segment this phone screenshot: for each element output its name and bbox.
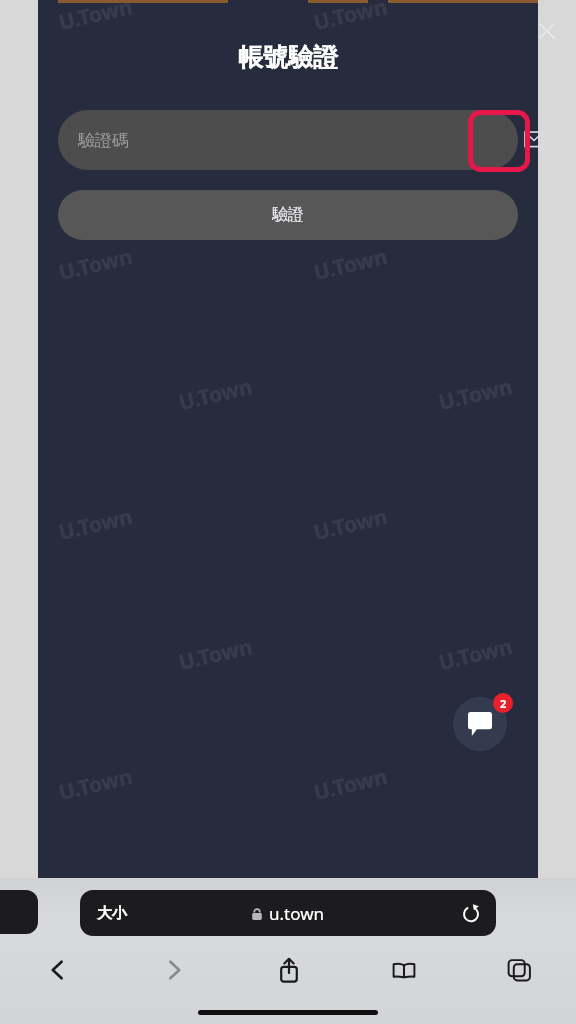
staticText: U.Town [56, 502, 135, 547]
button[interactable]: Reload [456, 898, 486, 928]
staticText: U.Town [311, 502, 390, 547]
button[interactable]: Previous tab [0, 890, 38, 934]
staticText: u.town [269, 902, 325, 925]
staticText: 大小 [97, 904, 127, 923]
staticText: 2 [500, 696, 507, 711]
button[interactable]: Chat [453, 697, 507, 751]
button[interactable]: Send verification code by email [508, 112, 564, 168]
button[interactable]: 驗證碼 [58, 110, 518, 170]
staticText: U.Town [436, 632, 515, 677]
staticText: U.Town [56, 762, 135, 807]
staticText: 驗證 [272, 205, 304, 225]
staticText: U.Town [311, 762, 390, 807]
staticText: 驗證碼 [78, 130, 129, 151]
button[interactable]: 驗證 [58, 190, 518, 240]
button[interactable]: Share [231, 946, 346, 994]
staticText: U.Town [436, 372, 515, 417]
staticText: U.Town [176, 632, 255, 677]
staticText: U.Town [176, 372, 255, 417]
button[interactable]: Close [525, 9, 569, 53]
button[interactable]: Back [0, 946, 116, 994]
staticText: U.Town [311, 242, 390, 287]
button[interactable]: 大小 [80, 890, 496, 936]
staticText: U.Town [436, 112, 515, 157]
staticText: U.Town [56, 242, 135, 287]
button[interactable]: Forward [116, 946, 231, 994]
staticText: U.Town [56, 0, 135, 37]
staticText: U.Town [311, 0, 390, 37]
staticText: 帳號驗證 [238, 42, 338, 73]
button[interactable]: Bookmarks [346, 946, 461, 994]
button[interactable]: Tabs [461, 946, 576, 994]
